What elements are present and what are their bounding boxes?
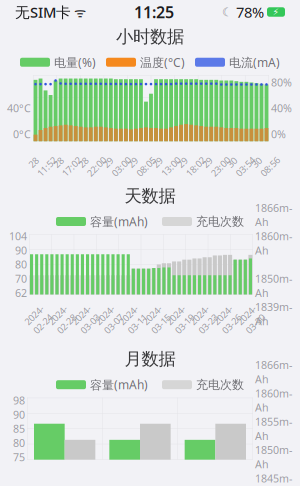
staticText: 30 08:56	[254, 150, 277, 175]
staticText: 0%	[271, 127, 286, 141]
staticText: 1845mAh	[255, 471, 292, 486]
staticText: 75	[13, 450, 25, 464]
staticText: 30 03:54	[229, 150, 252, 175]
staticText: 80	[15, 257, 27, 272]
staticText: 小时数据	[116, 26, 184, 47]
staticText: ⚡︎	[272, 7, 279, 17]
staticText: 1860mAh	[255, 386, 292, 414]
staticText: 29 03:00	[105, 150, 128, 175]
staticText: 29 23:00	[205, 150, 228, 175]
staticText: 2024-03-30	[239, 307, 262, 332]
staticText: 1860mAh	[255, 229, 292, 257]
staticText: 28 11:52	[31, 150, 54, 175]
staticText: ☾	[222, 5, 233, 19]
staticText: 1850mAh	[255, 271, 292, 300]
staticText: 40%	[271, 101, 292, 115]
staticText: 容量(mAh)	[90, 213, 148, 229]
staticText: 11:25	[134, 1, 174, 23]
staticText: 2024-03-23	[192, 307, 215, 332]
staticText: 90	[13, 407, 25, 422]
staticText: 1839mAh	[255, 300, 292, 328]
staticText: 85	[13, 422, 25, 436]
staticText: 29 18:02	[180, 150, 203, 175]
staticText: 容量(mAh)	[90, 377, 148, 393]
staticText: 1866mAh	[255, 358, 292, 386]
staticText: 温度(°C)	[140, 54, 185, 70]
staticText: 98	[13, 393, 25, 407]
staticText: 月数据	[124, 348, 175, 370]
staticText: 电流(mA)	[229, 54, 280, 70]
staticText: 无SIM卡	[15, 2, 71, 22]
staticText: 2024-03-15	[145, 307, 168, 332]
staticText: 28 22:00	[81, 150, 104, 175]
staticText: 2024-03-26	[216, 307, 239, 332]
staticText: 40°C	[7, 101, 31, 115]
staticText: 2024-02-28	[51, 307, 74, 332]
staticText: 天数据	[124, 185, 175, 206]
staticText: 28 17:02	[56, 150, 79, 175]
staticText: 62	[15, 286, 27, 300]
staticText: 充电次数	[196, 214, 244, 229]
staticText: 1866mAh	[255, 201, 292, 229]
staticText: 70	[15, 271, 27, 286]
staticText: 80%	[271, 75, 292, 89]
staticText: 29 13:00	[155, 150, 178, 175]
staticText: 29 08:05	[130, 150, 153, 175]
staticText: 80	[13, 436, 25, 450]
staticText: 90	[15, 243, 27, 257]
staticText: 1850mAh	[255, 443, 292, 471]
staticText: 1855mAh	[255, 414, 292, 443]
staticText: 2024-02-24	[27, 307, 50, 332]
staticText: 2024-03-11	[121, 307, 144, 332]
staticText: 78%	[236, 2, 264, 22]
staticText: 充电次数	[196, 377, 244, 392]
staticText: 2024-03-07	[98, 307, 121, 332]
staticText: 104	[9, 229, 27, 243]
staticText: ᯤ	[71, 3, 86, 21]
staticText: 2024-03-19	[169, 307, 192, 332]
staticText: 电量(%)	[54, 54, 96, 70]
staticText: 2024-03-03	[74, 307, 97, 332]
staticText: 0°C	[13, 127, 31, 141]
